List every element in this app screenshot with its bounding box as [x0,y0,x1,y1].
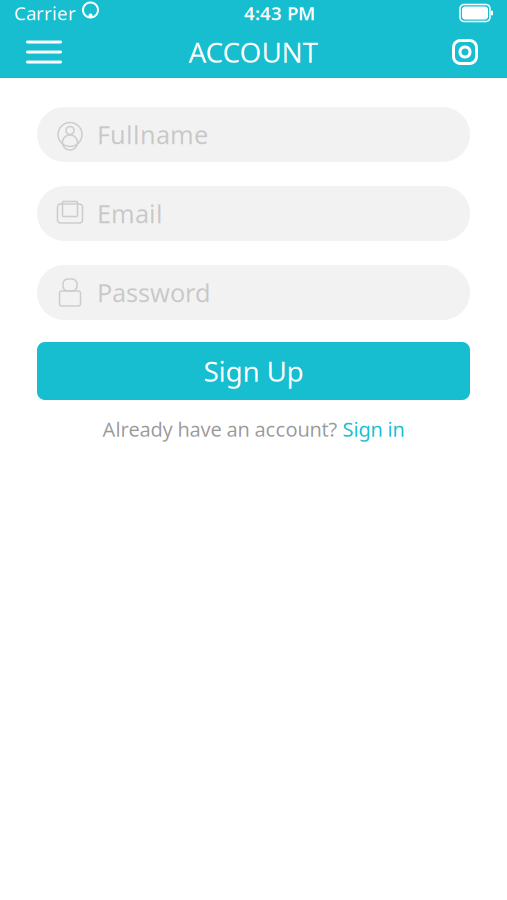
staticText: Password [97,276,211,309]
staticText: Sign Up [203,352,303,390]
staticText: Sign in [342,416,404,442]
staticText: Already have an account? [102,416,337,442]
staticText: Email [97,197,163,230]
button[interactable]: Password [37,265,470,320]
button[interactable]: Settings [439,30,491,74]
button[interactable]: Email [37,186,470,241]
staticText: Fullname [97,118,208,151]
button[interactable]: Sign Up [37,342,470,400]
button[interactable]: Already have an account? [102,414,404,444]
staticText: 4:43 PM [244,1,315,25]
button[interactable]: Menu [18,30,70,74]
staticText: Carrier [14,1,76,25]
staticText: ACCOUNT [188,33,318,71]
button[interactable]: Fullname [37,107,470,162]
